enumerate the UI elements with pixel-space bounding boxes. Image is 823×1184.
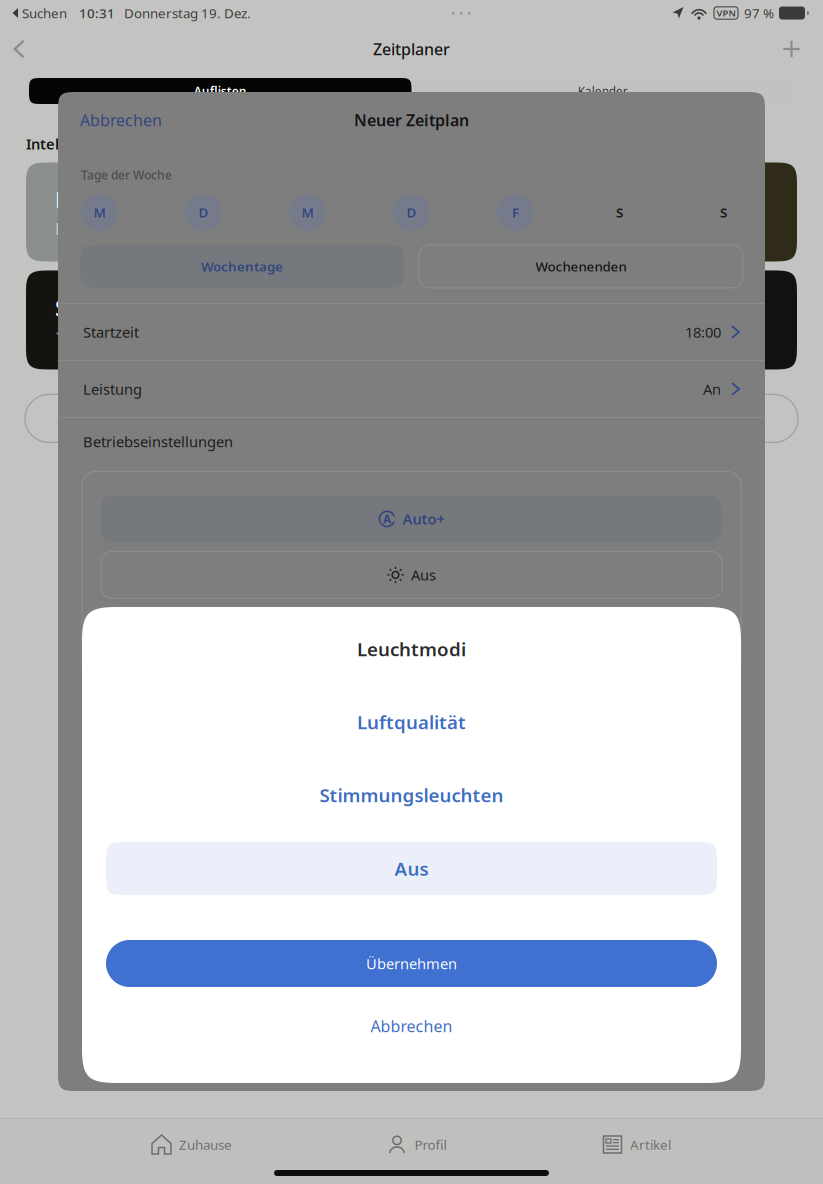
button[interactable]: Morgen	[26, 162, 404, 261]
button[interactable]: Hinzufügen	[768, 26, 823, 72]
staticText: D	[406, 204, 416, 221]
staticText: Intelligente Zeitpläne	[26, 134, 180, 153]
staticText: Tagsüber	[447, 186, 541, 214]
staticText: 97 %	[738, 4, 774, 22]
staticText: 1 Zeitplan	[55, 326, 129, 347]
button[interactable]: Zeitplan hinzufügen	[25, 394, 798, 442]
staticText: Zuhause	[179, 1136, 232, 1153]
staticText: Wochentage	[201, 258, 283, 275]
staticText: Aus	[411, 565, 436, 585]
button[interactable]: D	[393, 194, 430, 231]
staticText: M	[93, 204, 105, 221]
button[interactable]: Schlafen	[26, 270, 404, 369]
staticText: Abbrechen	[80, 109, 162, 131]
button[interactable]: S	[601, 194, 638, 231]
button[interactable]: Stimmungsleuchten	[106, 773, 717, 817]
staticText: Auflisten	[194, 83, 247, 99]
button[interactable]: Profil	[305, 1122, 527, 1166]
button[interactable]: M	[289, 194, 326, 231]
staticText: Artikel	[630, 1136, 671, 1153]
staticText: • • •	[451, 5, 472, 21]
button[interactable]: Kalender	[411, 78, 794, 104]
button[interactable]: D	[185, 194, 222, 231]
button[interactable]: Auflisten	[29, 78, 411, 104]
staticText: Tage der Woche	[81, 167, 172, 183]
staticText: D	[198, 204, 208, 221]
button[interactable]: Abbrechen	[106, 1007, 717, 1045]
button[interactable]: Aus	[101, 551, 722, 598]
button[interactable]: Luftqualität	[106, 700, 717, 744]
staticText: Leuchtmodi	[357, 637, 466, 661]
staticText: M	[301, 204, 313, 221]
staticText: Suchen	[19, 4, 67, 22]
staticText: F	[512, 204, 519, 221]
button[interactable]: Abbrechen	[58, 92, 178, 148]
staticText: Donnerstag 19. Dez.	[115, 4, 251, 22]
staticText: Profil	[414, 1136, 446, 1153]
button[interactable]: Tagsüber	[418, 162, 797, 261]
button[interactable]: M	[81, 194, 118, 231]
staticText: Wochenenden	[535, 258, 626, 275]
button[interactable]: Übernehmen	[106, 940, 717, 987]
button[interactable]: S	[705, 194, 742, 231]
staticText: Neuer Zeitplan	[354, 109, 469, 131]
staticText: 18:00	[685, 322, 721, 342]
staticText: VPN	[716, 7, 735, 19]
staticText: Übernehmen	[366, 954, 457, 973]
staticText: Stimmungsleuchten	[319, 783, 503, 807]
staticText: An	[703, 379, 721, 399]
button[interactable]: Zuhause	[77, 1122, 305, 1166]
button[interactable]: Nacht	[418, 270, 797, 369]
staticText: Aus	[394, 856, 428, 881]
staticText: 10:31	[67, 4, 115, 22]
button[interactable]: Aus	[106, 842, 717, 895]
staticText: Kalender	[578, 83, 628, 99]
staticText: Zeitplaner	[373, 38, 450, 60]
button[interactable]: Wochenenden	[419, 245, 743, 288]
staticText: Betriebseinstellungen	[83, 432, 233, 451]
staticText: Startzeit	[83, 322, 139, 342]
staticText: S	[616, 204, 623, 221]
staticText: S	[720, 204, 727, 221]
button[interactable]: Nachtlicht	[101, 607, 722, 654]
staticText: Schlafen	[55, 294, 144, 322]
button[interactable]: Wochentage	[80, 245, 404, 288]
button[interactable]: Leistung	[58, 361, 765, 417]
button[interactable]: Startzeit	[58, 304, 765, 360]
staticText: Morgen	[55, 186, 136, 214]
staticText: Leistung	[83, 379, 142, 399]
button[interactable]: A	[101, 495, 722, 542]
staticText: Auto+	[402, 509, 444, 529]
staticText: Abbrechen	[370, 1015, 452, 1037]
staticText: Luftqualität	[357, 710, 466, 734]
staticText: Ein guter Start	[55, 218, 165, 239]
staticText: A	[383, 511, 391, 527]
button[interactable]: F	[497, 194, 534, 231]
button[interactable]: Zurück	[0, 26, 40, 72]
button[interactable]: Artikel	[527, 1122, 745, 1166]
